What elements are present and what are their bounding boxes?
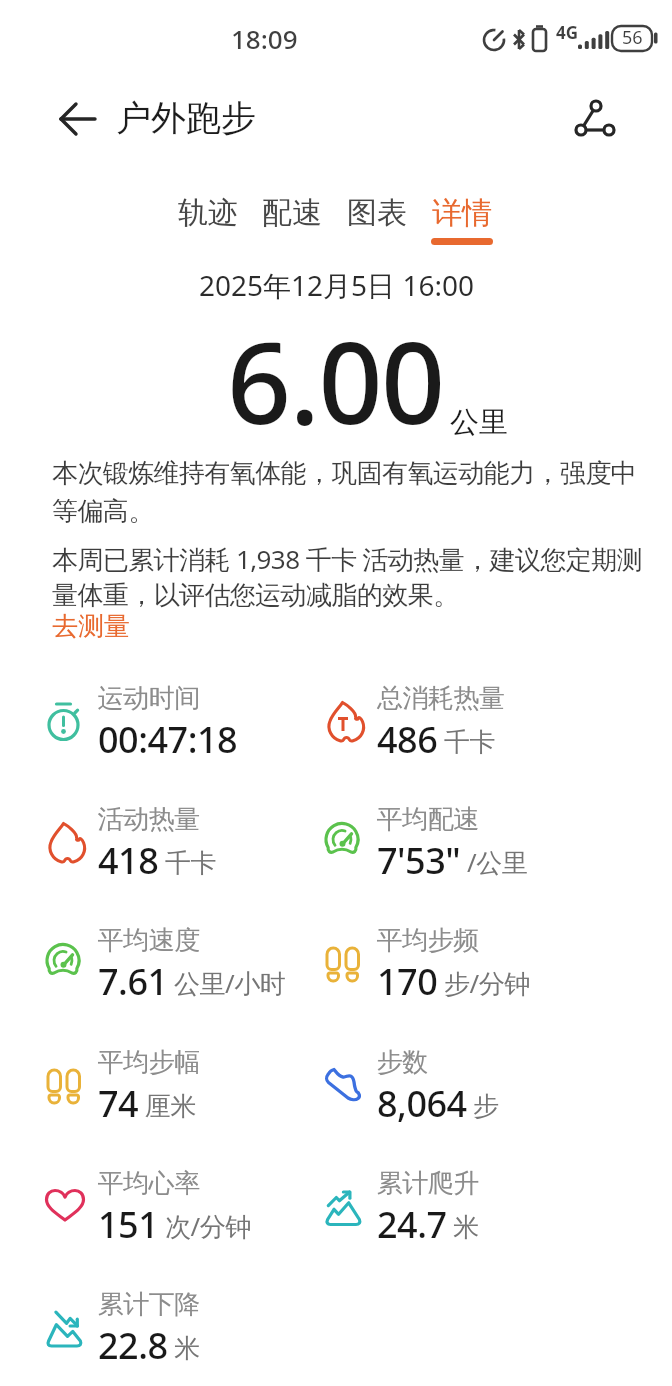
button[interactable]: 详情 xyxy=(424,194,500,250)
staticText: 平均步幅 xyxy=(98,1046,200,1079)
staticText: 本周已累计消耗 1,938 千卡 活动热量，建议您定期测 xyxy=(52,541,642,577)
staticText: 00:47:18 xyxy=(98,715,238,764)
staticText: 56 xyxy=(622,25,643,50)
staticText: 24.7 xyxy=(377,1200,447,1249)
staticText: 千卡 xyxy=(165,847,216,880)
button[interactable]: 平均速度 xyxy=(46,923,286,1007)
staticText: 户外跑步 xyxy=(116,96,256,140)
staticText: 418 xyxy=(98,836,159,885)
staticText: 170 xyxy=(377,957,438,1006)
staticText: 22.8 xyxy=(98,1321,168,1370)
staticText: 图表 xyxy=(347,194,407,232)
staticText: 18:09 xyxy=(231,21,298,56)
button[interactable]: 配速 xyxy=(254,194,330,240)
staticText: 步/分钟 xyxy=(444,965,530,1001)
button[interactable] xyxy=(48,96,104,144)
staticText: 8,064 xyxy=(377,1079,467,1128)
button[interactable] xyxy=(566,92,626,148)
staticText: 步数 xyxy=(377,1046,428,1079)
staticText: 6.00 xyxy=(227,304,444,457)
button[interactable]: 轨迹 xyxy=(170,194,246,240)
staticText: 累计下降 xyxy=(98,1288,200,1321)
staticText: 74 xyxy=(98,1079,139,1128)
staticText: 量体重，以评估您运动减脂的效果。 xyxy=(52,579,459,612)
button[interactable]: 活动热量 xyxy=(46,802,216,886)
staticText: 配速 xyxy=(262,194,322,232)
staticText: 2025年12月5日 16:00 xyxy=(199,266,474,304)
staticText: 平均心率 xyxy=(98,1167,200,1200)
staticText: /公里 xyxy=(467,844,528,880)
staticText: 486 xyxy=(377,715,438,764)
button[interactable]: 平均步频 xyxy=(325,923,530,1007)
button[interactable]: 图表 xyxy=(339,194,415,240)
button[interactable]: 步数 xyxy=(325,1045,499,1129)
staticText: 平均步频 xyxy=(377,924,479,957)
staticText: 本次锻炼维持有氧体能，巩固有氧运动能力，强度中 xyxy=(52,457,637,490)
staticText: 轨迹 xyxy=(178,194,238,232)
button[interactable]: 累计下降 xyxy=(46,1287,200,1371)
staticText: 厘米 xyxy=(145,1090,196,1123)
staticText: 4G xyxy=(556,21,579,44)
staticText: 总消耗热量 xyxy=(377,682,505,715)
staticText: 平均配速 xyxy=(377,803,479,836)
staticText: 7.61 xyxy=(98,957,168,1006)
staticText: 151 xyxy=(98,1200,159,1249)
staticText: 公里/小时 xyxy=(174,965,286,1001)
button[interactable]: 累计爬升 xyxy=(325,1166,479,1250)
button[interactable]: 运动时间 xyxy=(46,681,238,765)
staticText: 步 xyxy=(473,1090,499,1123)
staticText: 累计爬升 xyxy=(377,1167,479,1200)
staticText: 运动时间 xyxy=(98,682,200,715)
staticText: 米 xyxy=(453,1211,479,1244)
button[interactable]: 平均心率 xyxy=(46,1166,251,1250)
staticText: 次/分钟 xyxy=(165,1208,251,1244)
staticText: 详情 xyxy=(432,194,492,232)
staticText: 活动热量 xyxy=(98,803,200,836)
staticText: 米 xyxy=(174,1332,200,1365)
button[interactable]: 总消耗热量 xyxy=(325,681,505,765)
staticText: 等偏高。 xyxy=(52,495,154,528)
staticText: 千卡 xyxy=(444,726,495,759)
staticText: 公里 xyxy=(450,404,508,441)
button[interactable]: 平均步幅 xyxy=(46,1045,200,1129)
button[interactable]: 平均配速 xyxy=(325,802,528,886)
staticText: 平均速度 xyxy=(98,924,200,957)
staticText: 7'53" xyxy=(377,836,461,885)
